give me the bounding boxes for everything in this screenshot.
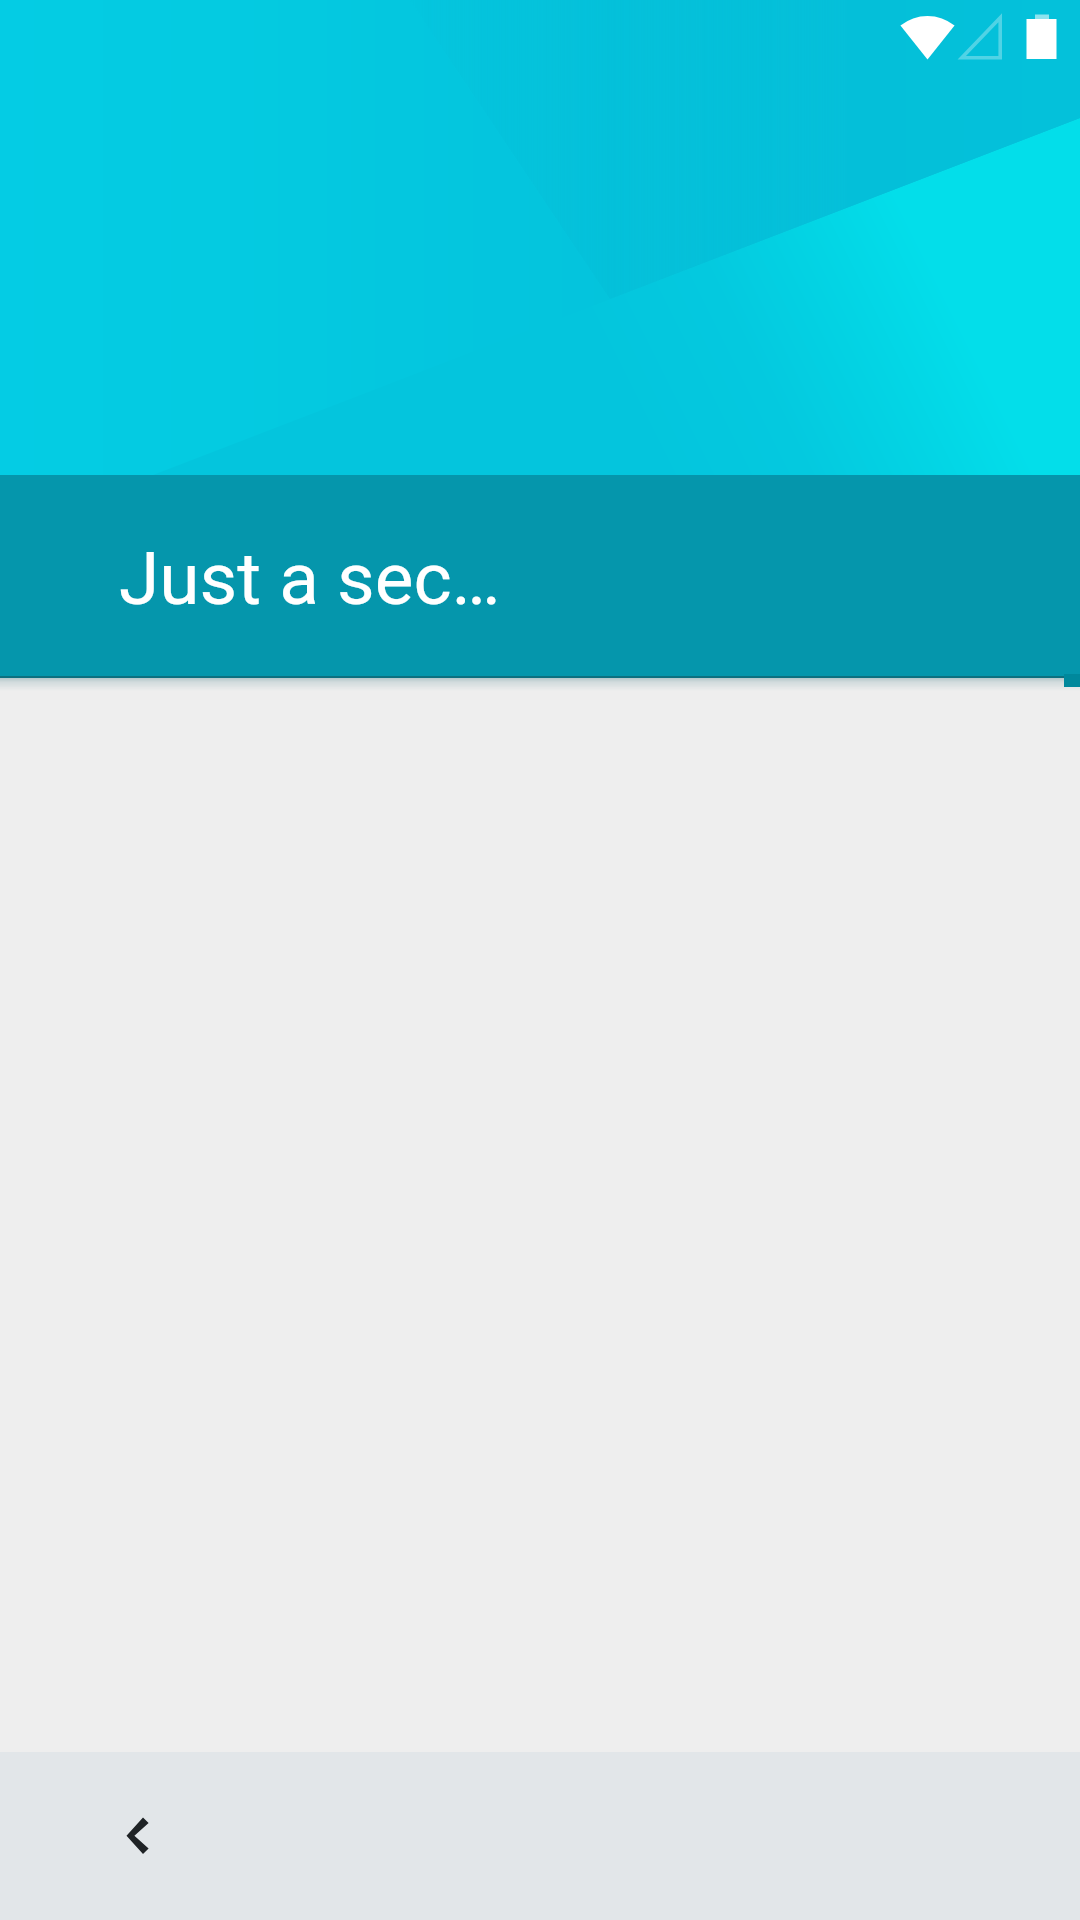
staticText: Just a sec… — [119, 536, 501, 622]
button[interactable]: Back — [60, 1764, 204, 1908]
